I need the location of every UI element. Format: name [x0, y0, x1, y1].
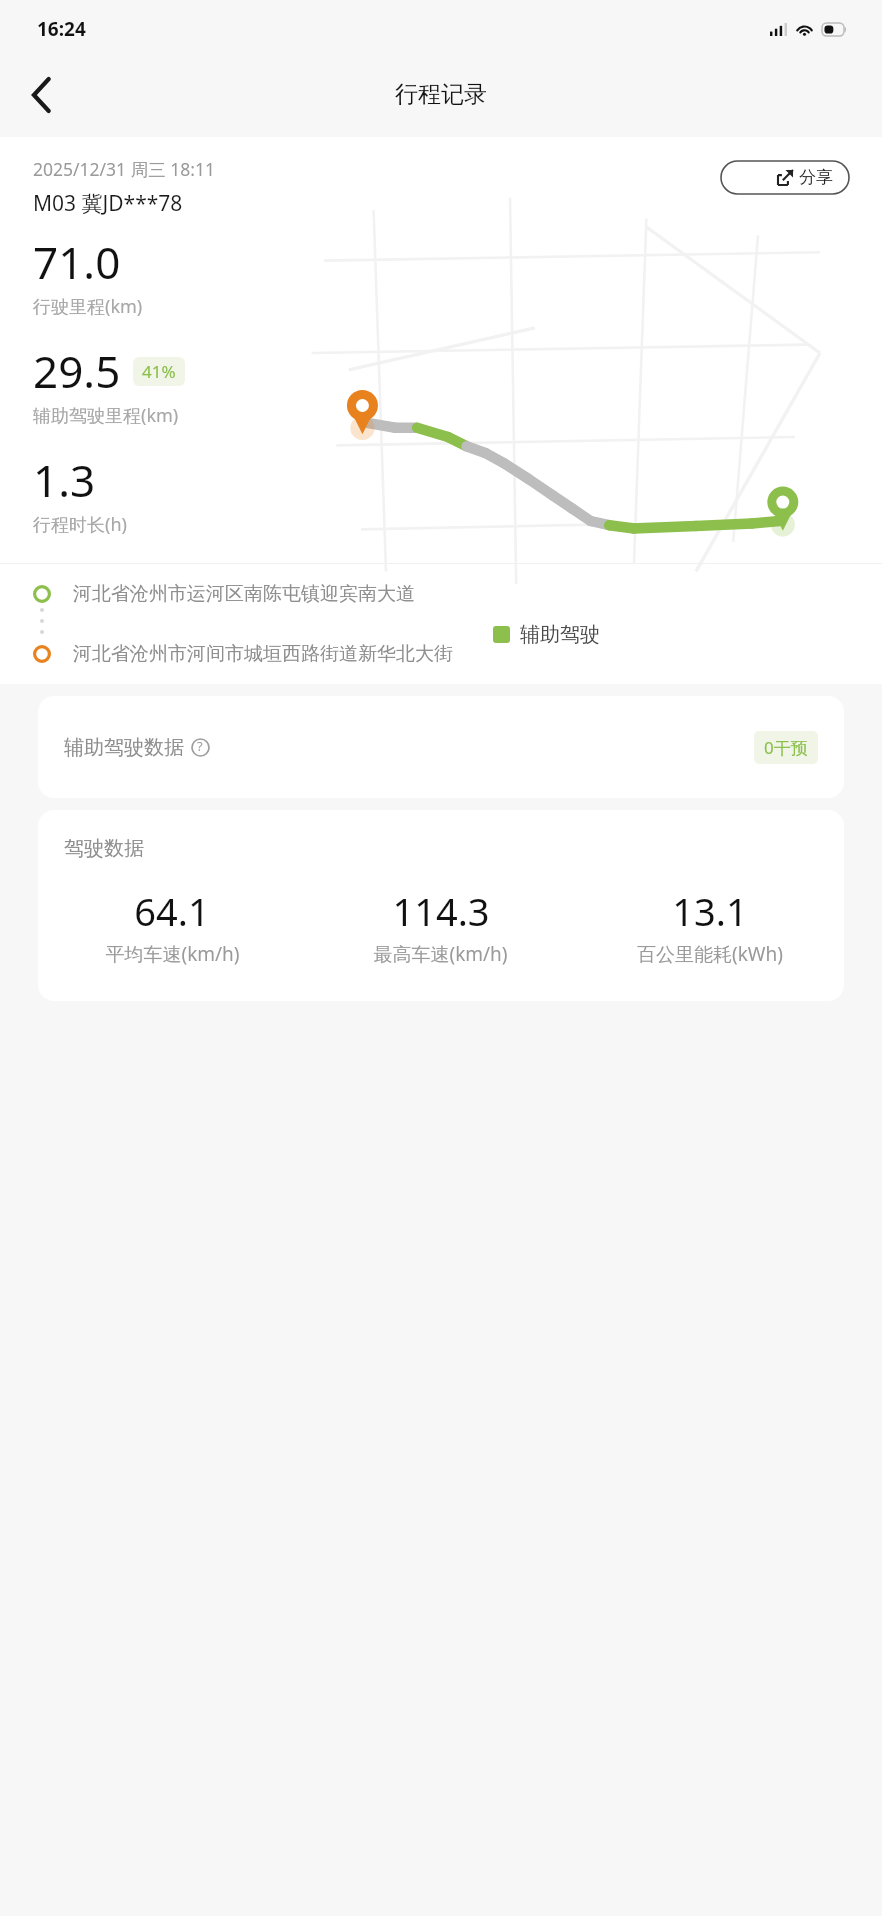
staticText: ?: [197, 737, 203, 755]
staticText: 行程时长(h): [33, 512, 127, 537]
staticText: 辅助驾驶数据: [64, 735, 184, 760]
staticText: 辅助驾驶: [520, 622, 600, 647]
staticText: 114.3: [392, 885, 490, 937]
staticText: 1.3: [33, 450, 96, 510]
staticText: 分享: [799, 167, 833, 188]
button[interactable]: 辅助驾驶数据: [38, 696, 844, 798]
staticText: 13.1: [672, 885, 748, 937]
staticText: 平均车速(km/h): [105, 941, 240, 967]
staticText: 29.5: [33, 341, 121, 401]
staticText: 河北省沧州市河间市城垣西路街道新华北大街: [73, 642, 453, 666]
staticText: 行驶里程(km): [33, 294, 143, 319]
button[interactable]: 河北省沧州市运河区南陈屯镇迎宾南大道: [0, 582, 882, 666]
staticText: 辅助驾驶里程(km): [33, 403, 179, 428]
staticText: 71.0: [33, 232, 121, 292]
staticText: 驾驶数据: [64, 836, 144, 861]
staticText: 河北省沧州市运河区南陈屯镇迎宾南大道: [73, 582, 415, 606]
button[interactable]: Back: [10, 64, 72, 126]
staticText: 0干预: [764, 736, 808, 759]
staticText: 41%: [142, 360, 176, 383]
staticText: 最高车速(km/h): [373, 941, 508, 967]
staticText: 行程记录: [395, 80, 487, 109]
staticText: 16:24: [37, 16, 86, 42]
staticText: 2025/12/31 周三 18:11: [33, 157, 215, 181]
staticText: 百公里能耗(kWh): [637, 941, 783, 967]
staticText: M03 冀JD***78: [33, 189, 183, 218]
button[interactable]: 分享: [762, 161, 849, 194]
staticText: 64.1: [134, 885, 210, 937]
